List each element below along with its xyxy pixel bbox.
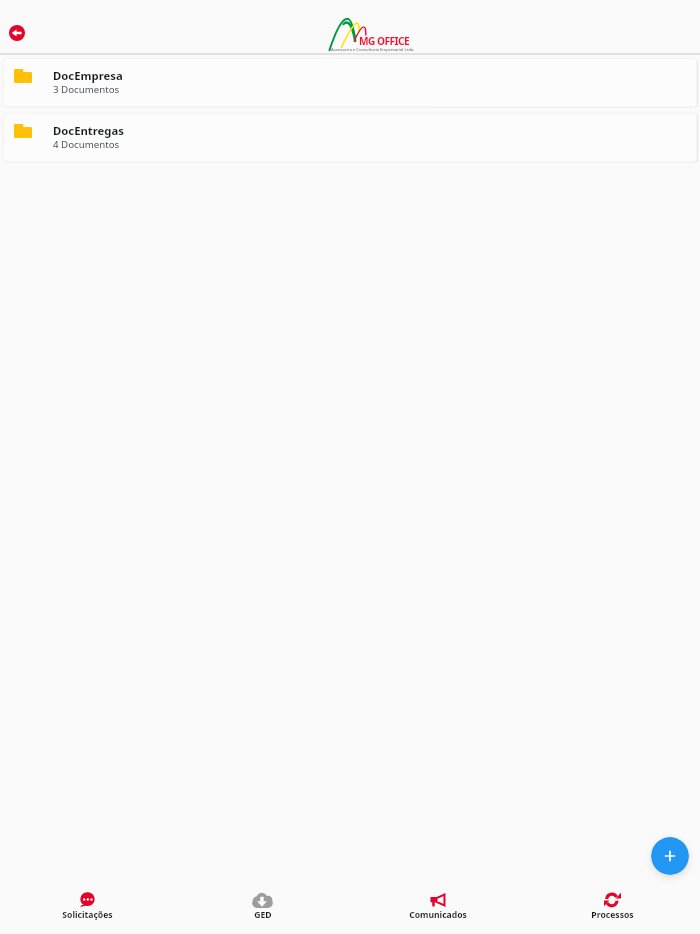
button[interactable]: Solicitações xyxy=(0,879,175,934)
staticText: DocEmpresa xyxy=(53,68,123,83)
button[interactable]: Adicionar xyxy=(651,837,689,875)
staticText: 3 Documentos xyxy=(53,83,120,96)
button[interactable]: GED xyxy=(175,879,350,934)
staticText: DocEntregas xyxy=(53,123,124,138)
button[interactable]: Voltar xyxy=(9,25,25,41)
button[interactable]: DocEmpresa xyxy=(3,58,697,107)
button[interactable]: Processos xyxy=(525,879,700,934)
staticText: Processos xyxy=(591,909,634,921)
staticText: Comunicados xyxy=(409,909,467,921)
button[interactable]: DocEntregas xyxy=(3,113,697,162)
staticText: Assessoria e Consultoria Empresarial Ltd… xyxy=(331,47,415,53)
staticText: 4 Documentos xyxy=(53,138,120,151)
button[interactable]: Comunicados xyxy=(350,879,525,934)
staticText: MG OFFICE xyxy=(359,34,410,48)
staticText: GED xyxy=(254,909,272,921)
staticText: Solicitações xyxy=(62,909,113,921)
